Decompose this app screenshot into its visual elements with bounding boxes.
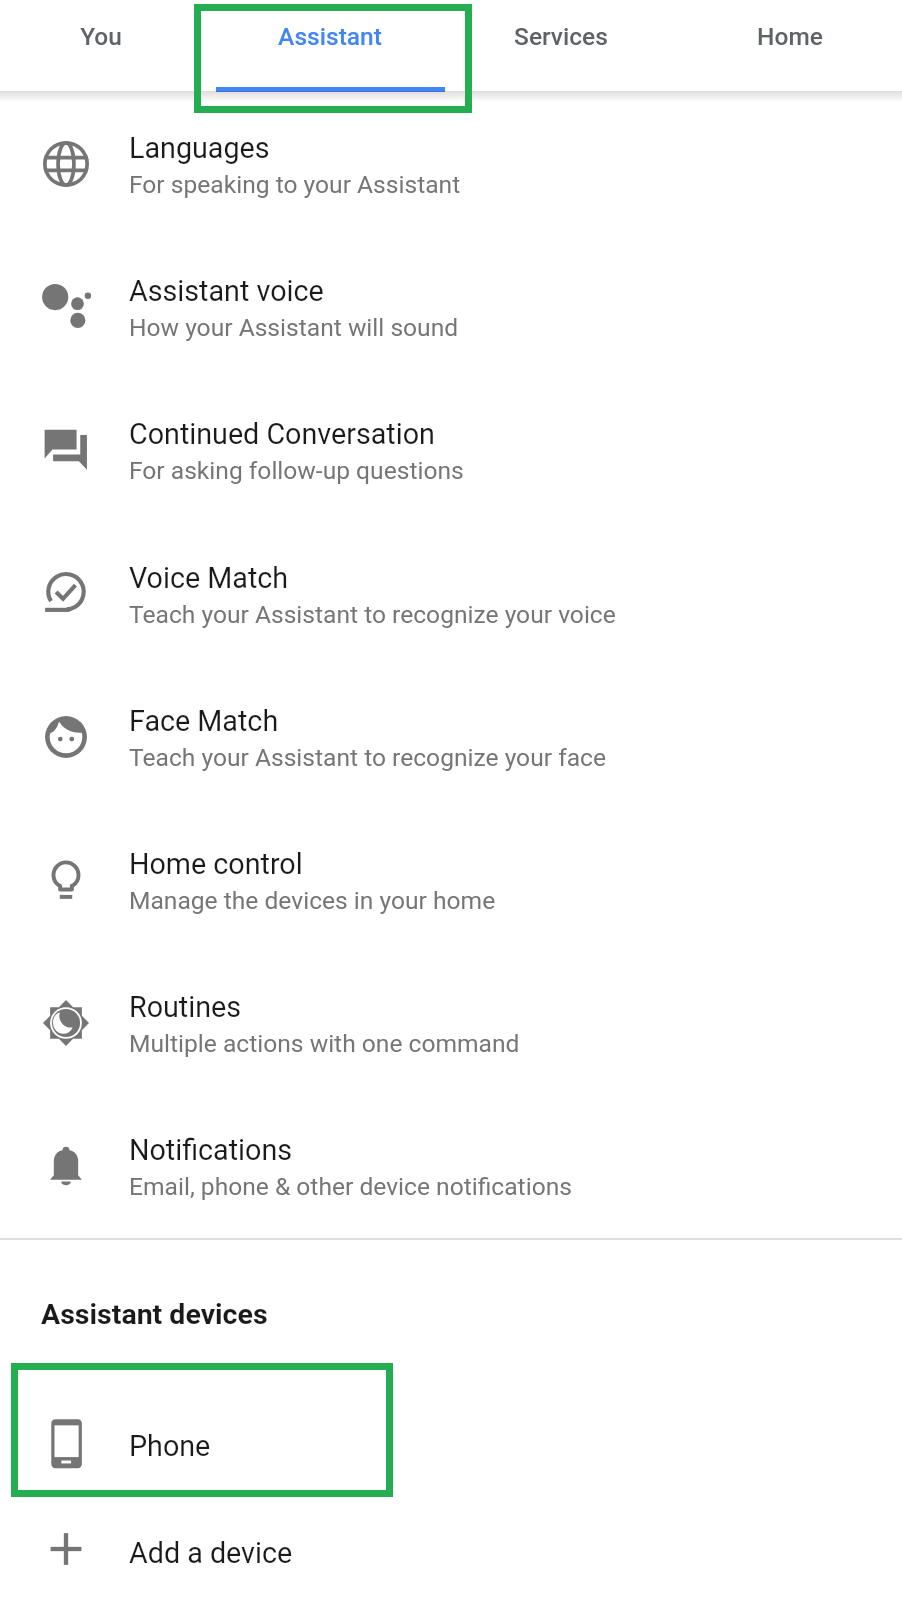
staticText: Assistant devices bbox=[41, 1298, 268, 1331]
button[interactable]: Services bbox=[446, 0, 676, 91]
staticText: Email, phone & other device notification… bbox=[129, 1172, 572, 1201]
button[interactable]: Routines bbox=[0, 951, 902, 1094]
button[interactable]: Assistant voice bbox=[0, 235, 902, 378]
staticText: Home control bbox=[129, 847, 303, 881]
staticText: Phone bbox=[129, 1429, 211, 1463]
staticText: You bbox=[80, 22, 122, 51]
staticText: Notifications bbox=[129, 1133, 293, 1167]
staticText: Multiple actions with one command bbox=[129, 1029, 520, 1058]
button[interactable]: Phone bbox=[0, 1386, 902, 1498]
staticText: Teach your Assistant to recognize your f… bbox=[129, 743, 606, 772]
staticText: Assistant voice bbox=[129, 274, 324, 308]
staticText: How your Assistant will sound bbox=[129, 313, 459, 342]
staticText: For speaking to your Assistant bbox=[129, 170, 461, 199]
staticText: Languages bbox=[129, 131, 270, 165]
staticText: Teach your Assistant to recognize your v… bbox=[129, 600, 616, 629]
button[interactable]: Languages bbox=[0, 92, 902, 235]
button[interactable]: Home bbox=[675, 0, 902, 91]
button[interactable]: Notifications bbox=[0, 1094, 902, 1237]
button[interactable]: You bbox=[0, 0, 216, 91]
button[interactable]: Face Match bbox=[0, 665, 902, 808]
button[interactable]: Home control bbox=[0, 808, 902, 951]
staticText: Continued Conversation bbox=[129, 417, 435, 451]
staticText: Manage the devices in your home bbox=[129, 886, 496, 915]
staticText: Home bbox=[757, 22, 823, 51]
button[interactable]: Continued Conversation bbox=[0, 378, 902, 521]
staticText: Add a device bbox=[129, 1536, 293, 1570]
staticText: Face Match bbox=[129, 704, 279, 738]
button[interactable]: Voice Match bbox=[0, 522, 902, 665]
staticText: Services bbox=[514, 22, 608, 51]
staticText: Voice Match bbox=[129, 561, 289, 595]
staticText: Routines bbox=[129, 990, 242, 1024]
staticText: For asking follow-up questions bbox=[129, 456, 464, 485]
button[interactable]: Add a device bbox=[0, 1493, 902, 1600]
staticText: Assistant bbox=[278, 22, 382, 51]
button[interactable]: Assistant bbox=[215, 0, 445, 91]
